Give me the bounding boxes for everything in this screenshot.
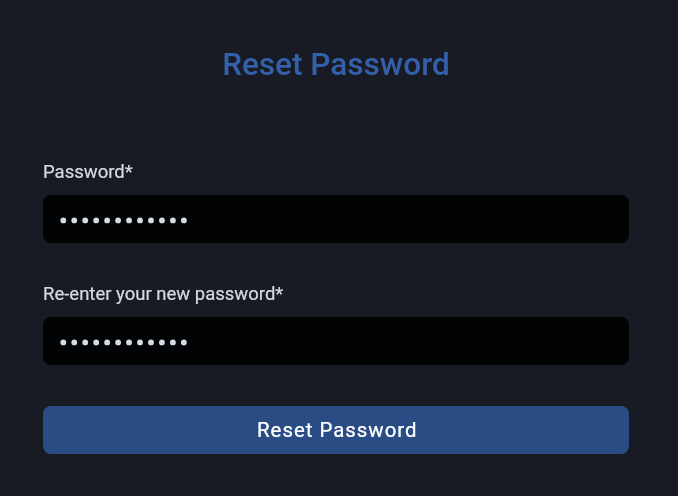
staticText: Reset Password: [43, 46, 629, 83]
button[interactable]: Re-enter your new password text field: [43, 317, 629, 365]
staticText: Re-enter your new password*: [43, 283, 284, 305]
button[interactable]: Password text field: [43, 195, 629, 243]
staticText: Reset Password: [257, 418, 418, 442]
staticText: Password*: [43, 161, 133, 183]
button[interactable]: Reset Password: [43, 406, 629, 454]
